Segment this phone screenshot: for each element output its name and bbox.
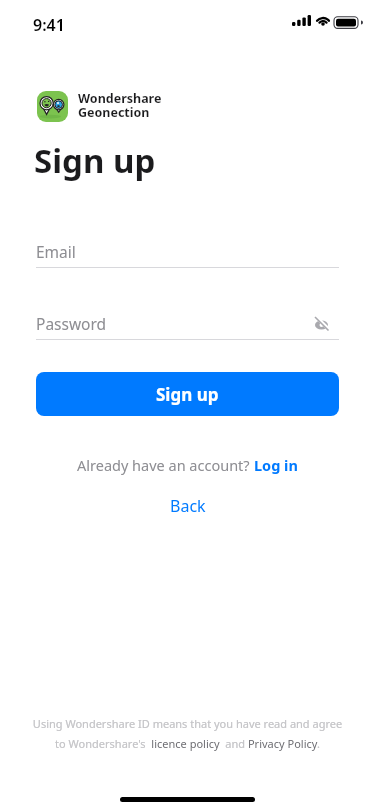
staticText: Already have an account? <box>77 455 254 475</box>
button[interactable]: Sign up <box>36 372 339 416</box>
staticText: Log in <box>254 455 298 475</box>
button[interactable]: Password <box>36 308 339 340</box>
button[interactable]: Back <box>170 495 206 517</box>
staticText: Password <box>36 313 107 334</box>
staticText: Sign up <box>34 138 156 183</box>
button[interactable]: Already have an account? <box>0 455 375 475</box>
staticText: Email <box>36 241 76 262</box>
staticText: Wondershare Geonection <box>78 90 162 121</box>
button[interactable]: Using Wondershare ID means that you have… <box>0 716 375 752</box>
button[interactable]: Email <box>36 236 339 268</box>
staticText: 9:41 <box>33 14 65 36</box>
staticText: Sign up <box>156 383 219 406</box>
button[interactable] <box>313 316 331 334</box>
